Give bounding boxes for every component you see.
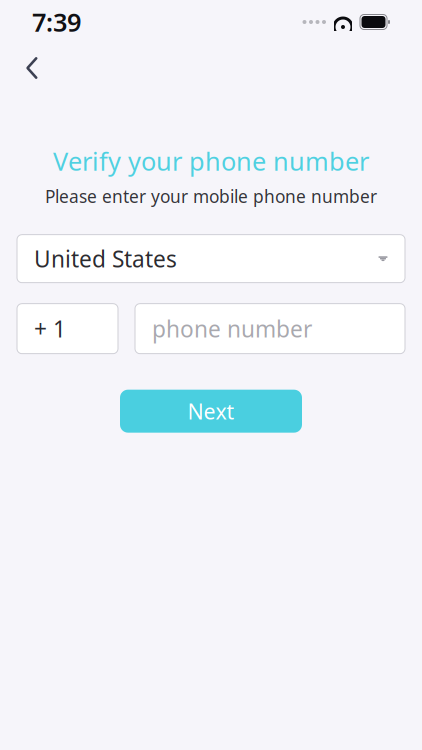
staticText: phone number bbox=[152, 314, 312, 344]
button[interactable]: phone number bbox=[135, 304, 405, 354]
staticText: Next bbox=[187, 397, 234, 425]
button[interactable]: Back bbox=[10, 46, 54, 90]
button[interactable]: + 1 bbox=[17, 304, 118, 354]
staticText: United States bbox=[34, 244, 177, 274]
staticText: + 1 bbox=[34, 314, 66, 344]
button[interactable]: United States bbox=[17, 235, 405, 283]
staticText: Verify your phone number bbox=[53, 144, 369, 178]
button[interactable]: Next bbox=[120, 390, 302, 433]
staticText: Please enter your mobile phone number bbox=[45, 185, 377, 208]
staticText: 7:39 bbox=[32, 5, 81, 39]
